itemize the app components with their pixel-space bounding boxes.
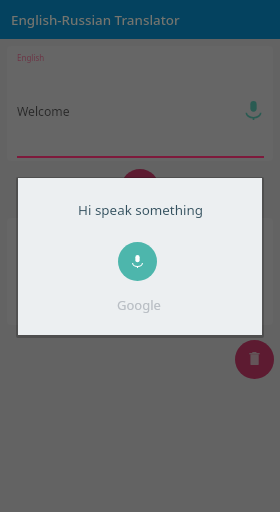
- staticText: Google: [117, 296, 161, 314]
- staticText: Hi speak something: [78, 201, 203, 219]
- staticText: English-Russian Translator: [11, 11, 180, 29]
- staticText: Welcome: [17, 103, 70, 120]
- button[interactable]: English: [7, 46, 273, 161]
- button[interactable]: [7, 218, 273, 325]
- button[interactable]: Translate: [121, 169, 159, 207]
- staticText: English: [17, 52, 45, 63]
- button[interactable]: Speak: [241, 98, 265, 122]
- button[interactable]: Microphone: [118, 242, 157, 281]
- button[interactable]: Delete: [235, 340, 274, 379]
